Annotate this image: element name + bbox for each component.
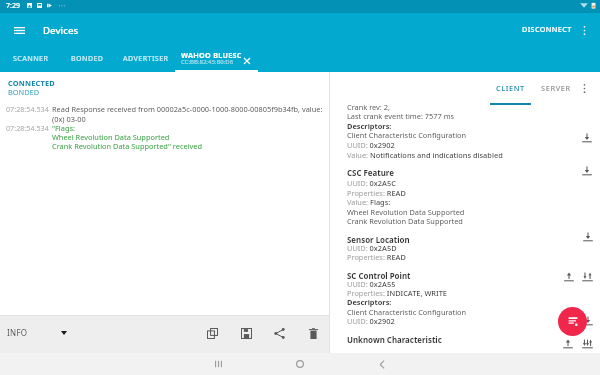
staticText: 07:28:54.534 (6, 104, 49, 114)
staticText: Unknown Characteristic (347, 335, 442, 346)
staticText: SERVER (541, 83, 571, 93)
button[interactable]: Write characteristic (559, 335, 577, 353)
staticText: BONDED (8, 87, 40, 97)
staticText: Descriptors: (347, 121, 392, 131)
staticText: Devices (43, 24, 79, 37)
staticText: CC:BB:82:45:B0:D6 (181, 58, 234, 66)
button[interactable]: Enable notifications (578, 335, 596, 353)
staticText: Properties: READ (347, 252, 406, 262)
button[interactable]: Delete (301, 315, 325, 352)
button[interactable]: Log (558, 307, 587, 336)
button[interactable]: SCANNER (2, 52, 59, 64)
staticText: Client Characteristic Configuration (347, 307, 467, 317)
staticText: SCANNER (13, 53, 49, 63)
button[interactable]: Recents (206, 353, 230, 375)
staticText: Read Response received from 00002a5c-000… (52, 104, 323, 114)
staticText: UUID: 0x2902 (347, 140, 395, 150)
button[interactable]: Open navigation drawer (5, 13, 33, 48)
button[interactable]: Read characteristic (578, 129, 596, 147)
staticText: WAHOO BLUESC (181, 50, 242, 60)
staticText: ADVERTISER (123, 53, 169, 63)
button[interactable]: CLIENT (487, 72, 533, 104)
button[interactable]: More options (574, 72, 594, 104)
button[interactable]: Copy (200, 315, 224, 352)
button[interactable]: INFO (1, 314, 75, 351)
staticText: Sensor Location (347, 235, 410, 246)
staticText: Value: Flags: (347, 197, 391, 207)
button[interactable]: WAHOO BLUESC (175, 48, 258, 72)
staticText: Wheel Revolution Data Supported (52, 132, 170, 142)
staticText: Properties: READ (347, 188, 406, 198)
staticText: CONNECTED (8, 78, 55, 88)
staticText: UUID: 0x2A55 (347, 279, 396, 289)
button[interactable]: DISCONNECT (516, 11, 578, 46)
button[interactable]: Write characteristic (560, 268, 578, 286)
staticText: Crank rev: 2, (347, 104, 390, 112)
staticText: Descriptors: (347, 297, 392, 307)
staticText: INFO (7, 327, 28, 338)
staticText: Client Characteristic Configuration (347, 130, 467, 140)
staticText: CSC Feature (347, 168, 394, 179)
button[interactable]: Share (267, 315, 291, 352)
staticText: Properties: INDICATE, WRITE (347, 288, 447, 298)
staticText: (0x) 03-00 (52, 114, 86, 124)
staticText: Crank Revolution Data Supported (347, 216, 463, 226)
staticText: UUID: 0x2A5D (347, 243, 397, 253)
staticText: Last crank event time: 7577 ms (347, 111, 455, 121)
staticText: UUID: 0x2902 (347, 316, 395, 326)
button[interactable]: Read characteristic (579, 312, 597, 330)
button[interactable]: More options (574, 13, 594, 48)
staticText: CLIENT (496, 83, 525, 93)
button[interactable]: BONDED (59, 52, 116, 64)
button[interactable]: SERVER (533, 72, 579, 104)
staticText: Value: Notifications and indications dis… (347, 150, 503, 160)
staticText: BONDED (71, 53, 104, 63)
staticText: 07:28:54.534 (6, 123, 49, 133)
button[interactable]: Save (234, 315, 258, 352)
button[interactable]: Close tab (239, 53, 254, 69)
staticText: DISCONNECT (522, 24, 572, 34)
staticText: Crank Revolution Data Supported" receive… (52, 141, 203, 151)
button[interactable]: Back (370, 353, 394, 375)
staticText: 7:29 (6, 0, 21, 10)
button[interactable]: ADVERTISER (116, 52, 175, 64)
staticText: SC Control Point (347, 271, 411, 282)
button[interactable]: Home (288, 353, 312, 375)
button[interactable]: Read characteristic (579, 228, 597, 246)
staticText: "Flags: (52, 123, 75, 133)
button[interactable]: Enable notifications (578, 268, 596, 286)
button[interactable]: Read characteristic (578, 162, 596, 180)
staticText: UUID: 0x2A5C (347, 178, 396, 188)
staticText: Wheel Revolution Data Supported (347, 207, 465, 217)
